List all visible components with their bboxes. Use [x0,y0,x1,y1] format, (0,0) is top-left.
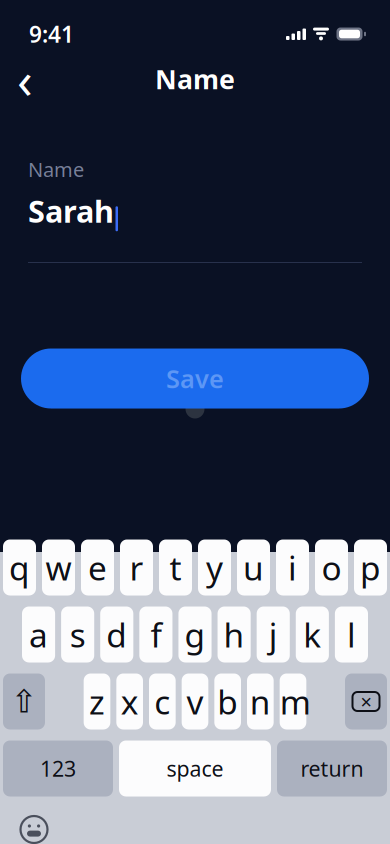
staticText: 123 [40,754,76,783]
button[interactable]: o [315,539,348,595]
staticText: ‹ [17,45,33,113]
button[interactable]: d [100,606,133,662]
staticText: ⇧ [10,683,37,720]
staticText: a [29,612,48,657]
button[interactable]: Save [21,348,369,408]
staticText: Sarah [28,191,114,231]
button[interactable]: p [354,539,387,595]
button[interactable]: j [257,606,290,662]
staticText: 9:41 [29,19,74,49]
button[interactable]: b [214,673,241,729]
staticText: v [186,679,203,724]
staticText: j [269,612,278,657]
button[interactable]: v [182,673,208,729]
staticText: g [184,612,205,657]
staticText: r [129,545,143,590]
button[interactable]: u [237,539,270,595]
staticText: × [360,688,371,715]
staticText: Save [166,362,224,395]
button[interactable]: z [84,673,110,729]
staticText: i [288,545,297,590]
staticText: b [217,679,238,724]
button[interactable]: r [120,539,153,595]
staticText: p [360,545,381,590]
staticText: k [303,612,321,657]
staticText: n [250,679,271,724]
button[interactable]: k [296,606,329,662]
button[interactable]: 123 [3,740,113,796]
staticText: x [121,679,139,724]
button[interactable]: e [81,539,114,595]
button[interactable]: Delete [345,673,387,729]
staticText: c [154,679,170,724]
button[interactable]: a [22,606,55,662]
staticText: u [243,545,264,590]
button[interactable]: x [116,673,143,729]
button[interactable]: c [149,673,176,729]
staticText: y [206,545,223,590]
staticText: z [89,679,105,724]
staticText: q [9,545,30,590]
button[interactable]: f [139,606,172,662]
button[interactable]: Back [2,57,48,101]
staticText: s [70,612,86,657]
staticText: Name [155,61,235,97]
button[interactable]: g [178,606,211,662]
staticText: o [321,545,341,590]
button[interactable]: l [335,606,368,662]
staticText: e [88,545,107,590]
staticText: m [280,679,306,724]
button[interactable]: h [218,606,251,662]
button[interactable]: i [276,539,309,595]
staticText: d [106,612,127,657]
button[interactable]: s [61,606,94,662]
button[interactable]: y [198,539,231,595]
staticText: h [224,612,245,657]
button[interactable]: q [3,539,36,595]
staticText: space [166,754,223,783]
staticText: return [300,754,363,783]
staticText: w [45,545,71,590]
staticText: f [150,612,161,657]
staticText: t [169,545,181,590]
staticText: l [347,612,356,657]
button[interactable]: Emoji keyboard [11,806,57,844]
button[interactable]: n [247,673,274,729]
button[interactable]: space [119,740,271,796]
button[interactable]: m [280,673,306,729]
staticText: Name [28,156,84,183]
button[interactable]: w [42,539,75,595]
button[interactable]: t [159,539,192,595]
button[interactable]: Shift [3,673,45,729]
button[interactable]: return [277,740,387,796]
